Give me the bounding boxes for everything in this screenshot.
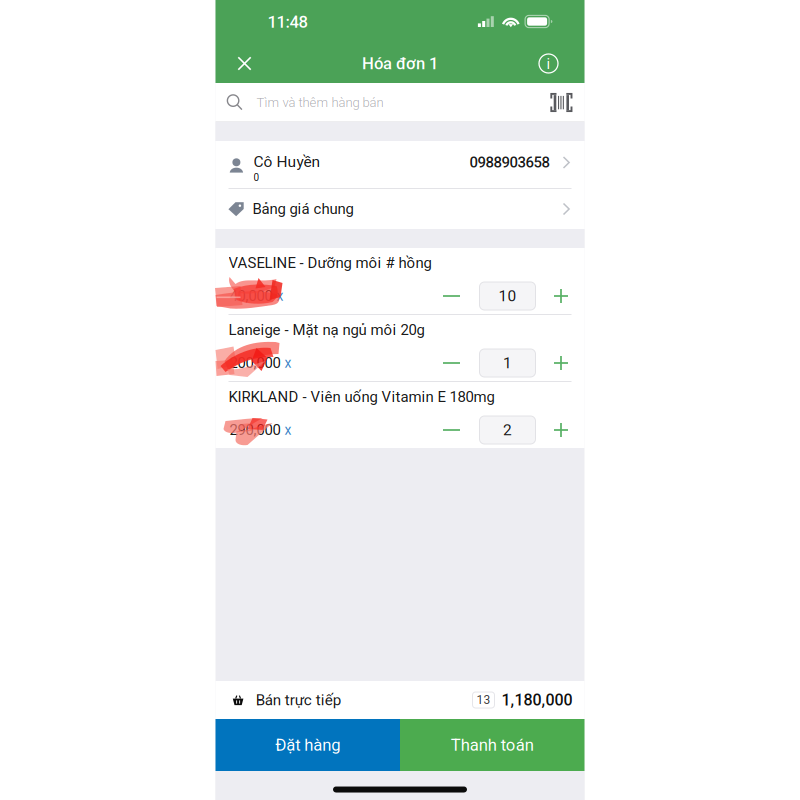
button[interactable]: Decrease quantity bbox=[434, 415, 468, 445]
staticText: x bbox=[284, 355, 291, 371]
staticText: 11:48 bbox=[267, 12, 307, 32]
button[interactable]: Thanh toán bbox=[400, 719, 584, 771]
button[interactable]: Đặt hàng bbox=[215, 719, 400, 771]
staticText: VASELINE - Dưỡng môi # hồng bbox=[228, 254, 431, 272]
staticText: KIRKLAND - Viên uống Vitamin E 180mg bbox=[228, 388, 494, 406]
staticText: Laneige - Mặt nạ ngủ môi 20g bbox=[228, 321, 424, 339]
staticText: 0988903658 bbox=[469, 154, 549, 171]
button[interactable]: Decrease quantity bbox=[434, 281, 468, 311]
staticText: 200,000 bbox=[229, 354, 280, 372]
staticText: i bbox=[546, 55, 550, 73]
staticText: Tìm và thêm hàng bán bbox=[256, 95, 383, 110]
button[interactable]: Cô Huyền bbox=[215, 141, 584, 188]
staticText: 0 bbox=[253, 172, 259, 183]
staticText: 1,180,000 bbox=[501, 691, 572, 709]
staticText: 290,000 bbox=[229, 421, 280, 439]
staticText: x bbox=[276, 288, 283, 304]
staticText: 40,000 bbox=[229, 287, 272, 305]
button[interactable]: Info bbox=[527, 44, 569, 83]
button[interactable]: Bảng giá chung bbox=[215, 189, 584, 229]
staticText: Hóa đơn 1 bbox=[362, 54, 438, 73]
staticText: 13 bbox=[476, 693, 490, 707]
button[interactable]: Increase quantity bbox=[545, 281, 576, 311]
button[interactable]: Close bbox=[223, 44, 265, 83]
staticText: Bán trực tiếp bbox=[256, 691, 342, 709]
button[interactable]: Increase quantity bbox=[545, 348, 576, 378]
staticText: Đặt hàng bbox=[275, 735, 340, 755]
staticText: x bbox=[284, 422, 291, 438]
button[interactable]: Increase quantity bbox=[545, 415, 576, 445]
staticText: 10 bbox=[498, 287, 516, 305]
staticText: 1 bbox=[503, 354, 512, 372]
staticText: 2 bbox=[503, 421, 512, 439]
button[interactable]: Tìm và thêm hàng bán bbox=[215, 83, 584, 122]
staticText: Thanh toán bbox=[451, 735, 534, 755]
staticText: Cô Huyền bbox=[253, 153, 320, 171]
staticText: Bảng giá chung bbox=[252, 200, 353, 218]
button[interactable]: Decrease quantity bbox=[434, 348, 468, 378]
